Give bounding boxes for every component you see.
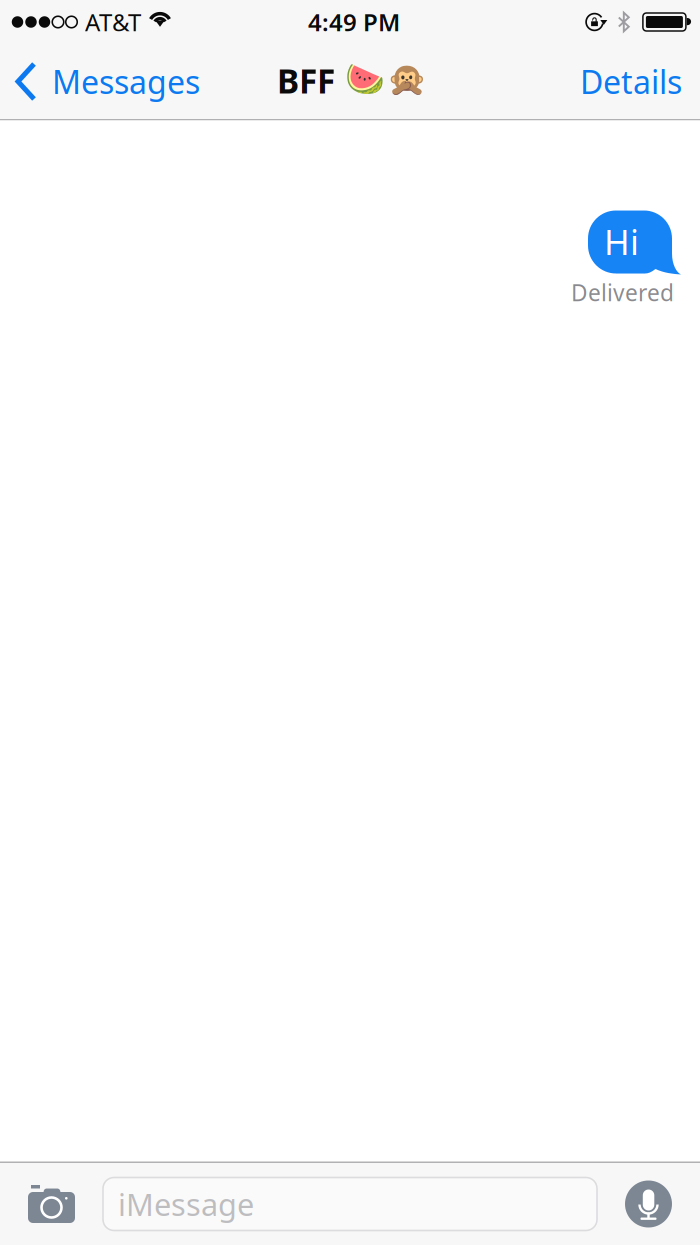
staticText: Details bbox=[580, 60, 682, 103]
staticText: Messages bbox=[52, 60, 200, 103]
button[interactable]: iMessage bbox=[103, 1177, 597, 1230]
staticText: Delivered bbox=[571, 277, 674, 308]
staticText: 4:49 PM bbox=[308, 6, 400, 38]
staticText: BFF bbox=[277, 58, 335, 103]
staticText: iMessage bbox=[118, 1184, 254, 1224]
staticText: 🍉 bbox=[345, 61, 385, 98]
staticText: 🙊 bbox=[387, 61, 427, 98]
button[interactable]: Record audio message bbox=[597, 1163, 700, 1245]
button[interactable]: Messages bbox=[0, 44, 214, 119]
button[interactable]: Take photo or video bbox=[0, 1163, 103, 1245]
button[interactable]: Details bbox=[558, 44, 700, 119]
staticText: AT&T bbox=[85, 6, 141, 38]
staticText: Hi bbox=[604, 218, 639, 264]
